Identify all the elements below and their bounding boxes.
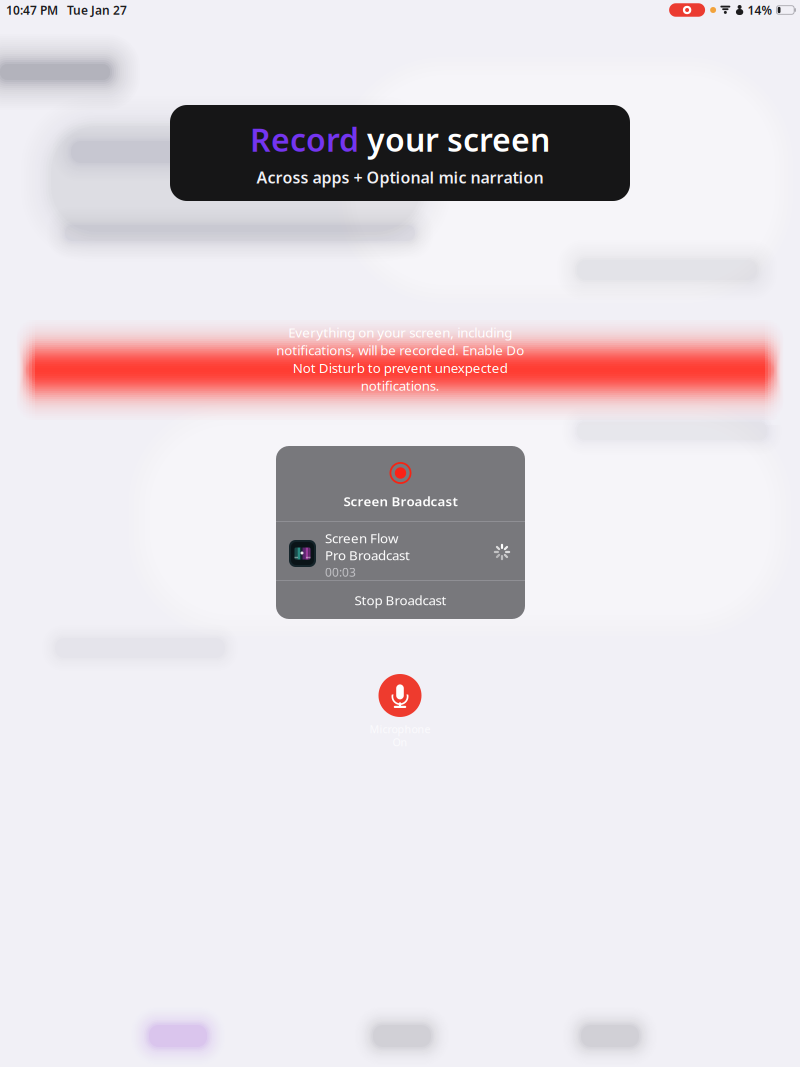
staticText: Across apps + Optional mic narration bbox=[256, 167, 543, 188]
staticText: Stop Broadcast bbox=[354, 591, 446, 609]
staticText: Pro Broadcast bbox=[325, 546, 410, 564]
staticText: your screen bbox=[359, 118, 550, 161]
staticText: Everything on your screen, including not… bbox=[276, 324, 524, 394]
staticText: 00:03 bbox=[325, 564, 356, 580]
staticText: Screen Broadcast bbox=[343, 492, 457, 510]
staticText: Record bbox=[250, 118, 359, 161]
button[interactable]: Stop Broadcast bbox=[276, 581, 525, 619]
staticText: 10:47 PM bbox=[6, 2, 58, 18]
staticText: 14% bbox=[748, 2, 773, 18]
staticText: Tue Jan 27 bbox=[58, 2, 127, 18]
staticText: Screen Flow bbox=[325, 529, 398, 547]
button[interactable]: Microphone bbox=[340, 674, 460, 764]
button[interactable]: Screen Flow bbox=[276, 522, 525, 581]
